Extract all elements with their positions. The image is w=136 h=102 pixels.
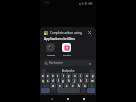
staticText: d (52, 79, 54, 83)
button[interactable]: n (82, 83, 87, 88)
button[interactable]: Photos (60, 42, 73, 57)
button[interactable]: Shift (41, 83, 49, 88)
staticText: f (58, 79, 59, 83)
staticText: x (59, 84, 61, 88)
button[interactable]: f (56, 78, 60, 83)
staticText: Galerie (47, 53, 55, 56)
button[interactable]: h (66, 78, 71, 83)
staticText: m (91, 79, 94, 83)
staticText: u (74, 74, 76, 78)
staticText: o (86, 74, 88, 78)
button[interactable]: a (41, 73, 45, 78)
staticText: r (57, 74, 59, 78)
button[interactable]: c (64, 83, 69, 88)
staticText: h (68, 79, 70, 83)
staticText: i (80, 74, 81, 78)
button[interactable]: l (84, 78, 89, 83)
button[interactable]: Search (87, 88, 95, 93)
button[interactable]: x (57, 83, 63, 88)
staticText: n (84, 84, 86, 88)
button[interactable]: Clear (88, 62, 91, 65)
staticText: q (42, 79, 44, 83)
button[interactable]: Close (87, 30, 92, 35)
staticText: c (66, 84, 68, 88)
button[interactable]: v (70, 83, 75, 88)
button[interactable]: j (72, 78, 77, 83)
button[interactable]: e (51, 73, 55, 78)
staticText: a (42, 74, 44, 78)
staticText: j (74, 79, 75, 83)
button[interactable]: Back (48, 95, 56, 102)
staticText: z (47, 74, 49, 78)
button[interactable]: m (90, 78, 95, 83)
button[interactable]: t (61, 73, 65, 78)
button[interactable]: u (72, 73, 77, 78)
staticText: v (72, 84, 74, 88)
button[interactable]: d (51, 78, 55, 83)
button[interactable]: k (78, 78, 83, 83)
staticText: Recherche (49, 61, 88, 65)
staticText: b (78, 84, 80, 88)
staticText: w (52, 84, 55, 88)
button[interactable]: g (61, 78, 65, 83)
staticText: k (80, 79, 82, 83)
staticText: t (63, 74, 64, 78)
staticText: e (52, 74, 54, 78)
staticText: Complete action using (50, 31, 87, 35)
button[interactable]: o (84, 73, 89, 78)
button[interactable]: Galerie (44, 42, 57, 57)
button[interactable]: w (50, 83, 56, 88)
staticText: Recherche (46, 69, 90, 73)
staticText: Applications brûlées (44, 37, 75, 41)
button[interactable]: Complete action using (43, 29, 93, 36)
staticText: g (62, 79, 64, 83)
staticText: l (86, 79, 87, 83)
button[interactable]: b (76, 83, 81, 88)
staticText: p (92, 74, 94, 78)
staticText: Photos (63, 53, 71, 56)
button[interactable]: Recherche (43, 60, 93, 66)
button[interactable]: Backspace (88, 83, 95, 88)
staticText: s (47, 79, 49, 83)
button[interactable]: Symbols (41, 88, 50, 93)
button[interactable]: i (78, 73, 83, 78)
button[interactable]: p (90, 73, 95, 78)
button[interactable]: z (46, 73, 50, 78)
staticText: 7:16 (43, 1, 49, 5)
button[interactable]: y (66, 73, 71, 78)
staticText: y (68, 74, 70, 78)
button[interactable]: s (46, 78, 50, 83)
button[interactable]: r (56, 73, 60, 78)
button[interactable]: q (41, 78, 45, 83)
button[interactable]: Home (64, 95, 72, 102)
button[interactable]: Recent apps (80, 95, 88, 102)
